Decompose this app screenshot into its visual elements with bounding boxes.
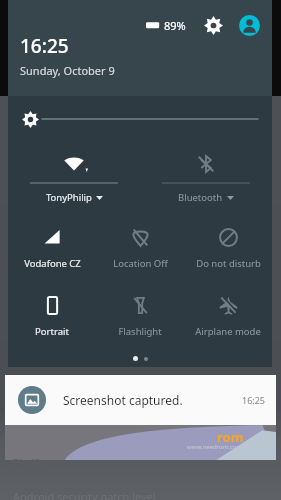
button[interactable]: Vodafone CZ (8, 214, 96, 282)
staticText: Location Off (113, 257, 168, 270)
staticText: Do not disturb (196, 257, 261, 270)
staticText: Vodafone CZ (24, 257, 81, 270)
staticText: Portrait (35, 325, 69, 338)
button[interactable]: Do not disturb (184, 214, 272, 282)
staticText: Screenshot captured. (63, 392, 183, 408)
staticText: TonyPhilip (46, 191, 92, 204)
staticText: 16:25 (20, 33, 69, 59)
staticText: Bluetooth (178, 191, 223, 204)
staticText: Pig (6) (13, 456, 43, 470)
staticText: rom (217, 428, 244, 446)
button[interactable]: Screenshot captured. (5, 375, 276, 425)
staticText: Sunday, October 9 (20, 63, 115, 78)
button[interactable]: Location Off (96, 214, 184, 282)
button[interactable]: Airplane mode (184, 282, 272, 350)
button[interactable]: Flashlight (96, 282, 184, 350)
button[interactable]: TonyPhilip (8, 142, 140, 214)
staticText: 16:25 (242, 394, 266, 406)
button[interactable]: Settings (200, 12, 226, 38)
staticText: www.needrom.com (187, 443, 243, 451)
staticText: Android security patch level (13, 489, 156, 500)
button[interactable]: Portrait (8, 282, 96, 350)
staticText: 89% (164, 18, 186, 33)
staticText: Airplane mode (195, 325, 261, 338)
button[interactable]: Bluetooth (140, 142, 272, 214)
button[interactable]: Brightness (8, 96, 272, 142)
button[interactable]: User profile (236, 12, 262, 38)
staticText: Flashlight (118, 325, 162, 338)
